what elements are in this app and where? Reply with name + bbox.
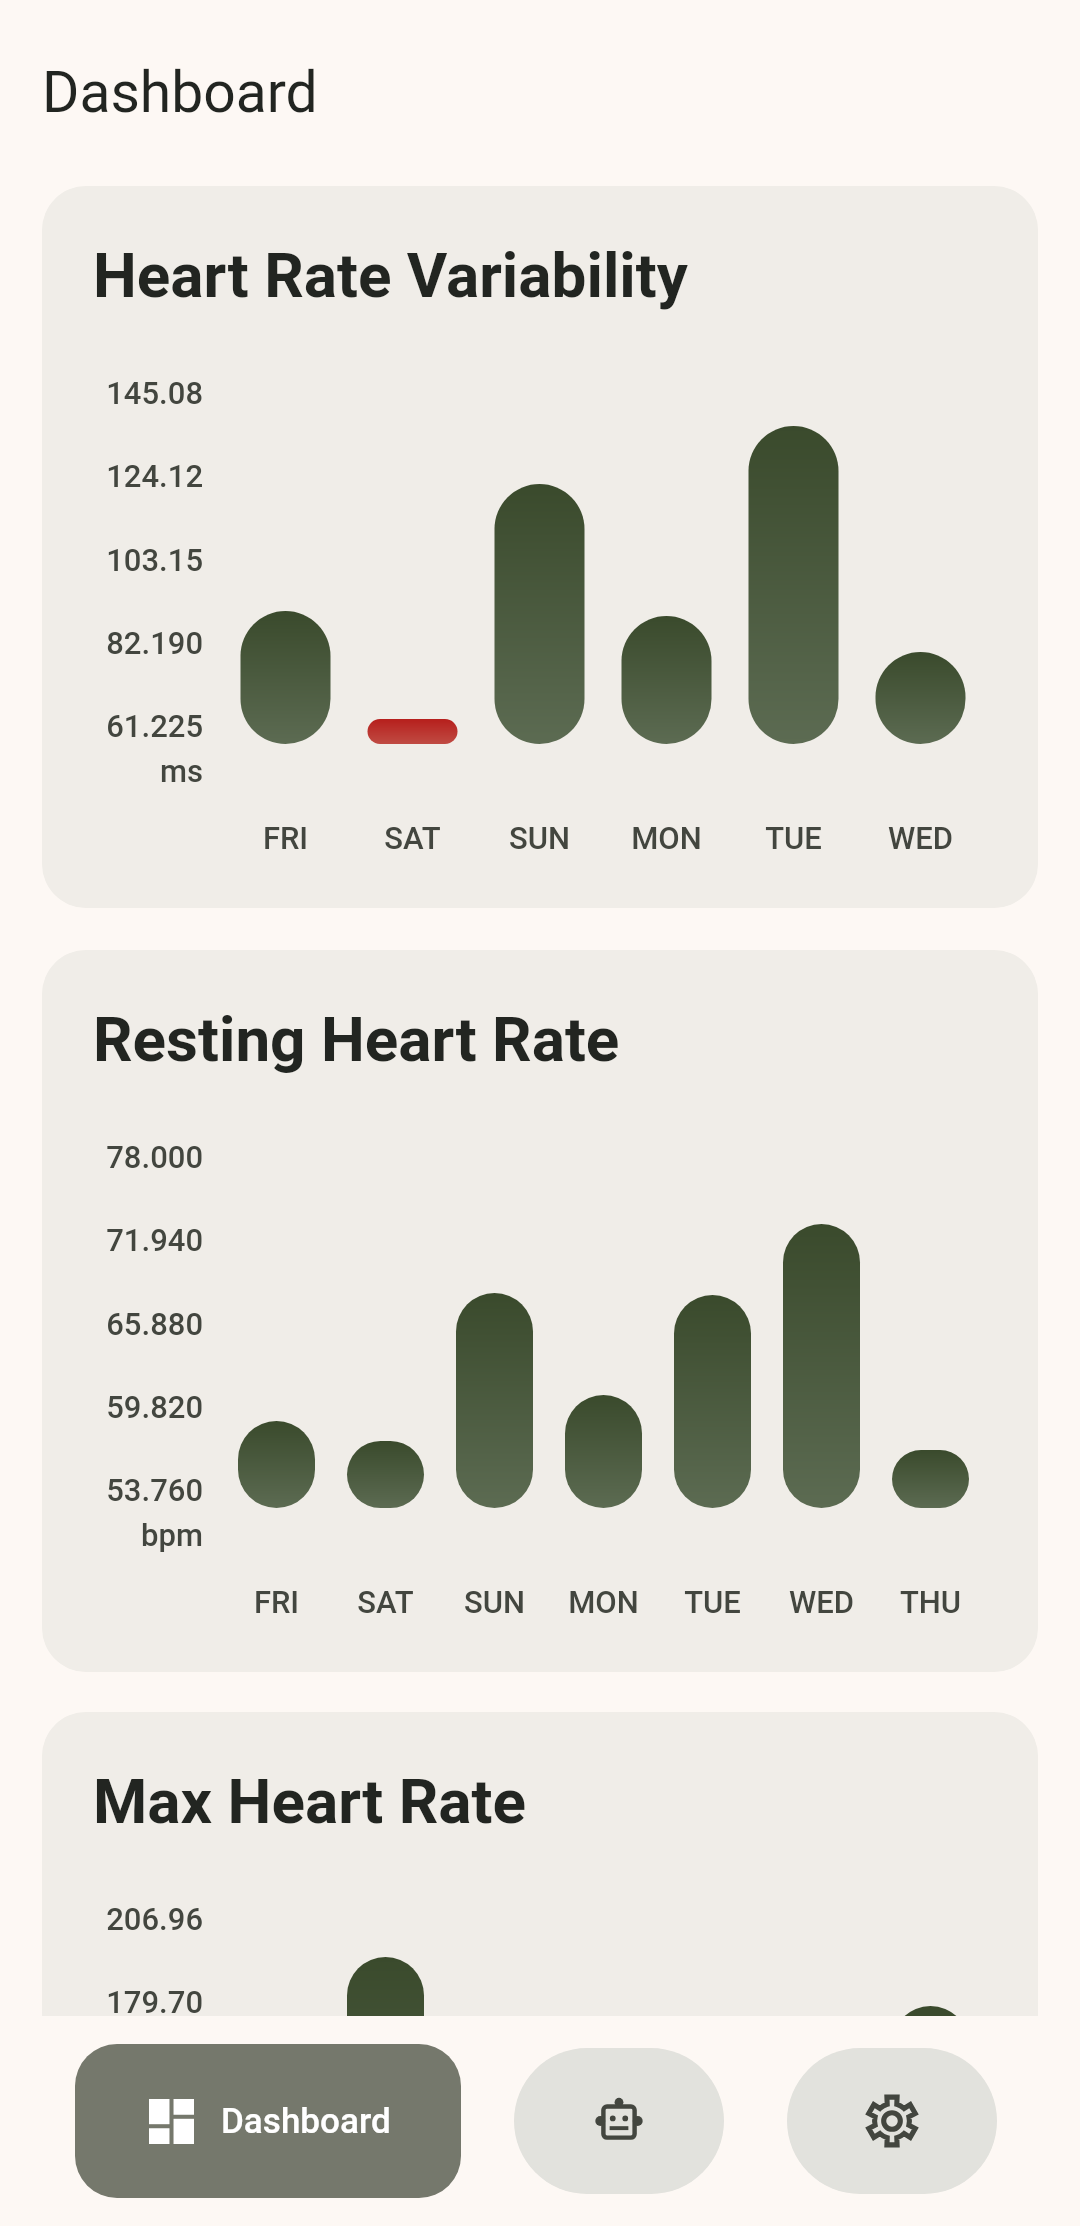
staticText: 78.000 [42,1139,203,1175]
staticText: Dashboard [221,2101,391,2142]
button[interactable]: Max Heart Rate [42,1712,1038,2016]
staticText: Resting Heart Rate [93,1003,620,1076]
staticText: bpm [42,1517,203,1553]
staticText: TUE [658,1584,767,1620]
staticText: 179.70 [42,1984,203,2016]
staticText: 124.12 [42,458,203,494]
staticText: 71.940 [42,1222,203,1258]
staticText: 103.15 [42,542,203,578]
button[interactable]: Heart Rate Variability [42,186,1038,908]
staticText: SUN [476,820,603,856]
staticText: Dashboard [42,59,318,126]
staticText: THU [876,1584,985,1620]
staticText: SAT [331,1584,440,1620]
staticText: MON [549,1584,658,1620]
staticText: ms [42,753,203,789]
staticText: SAT [349,820,476,856]
staticText: 65.880 [42,1306,203,1342]
button[interactable]: Settings [787,2048,997,2194]
staticText: Max Heart Rate [93,1765,526,1838]
staticText: WED [767,1584,876,1620]
staticText: 61.225 [42,708,203,744]
button[interactable]: Assistant [514,2048,724,2194]
staticText: WED [857,820,984,856]
button[interactable]: Dashboard [75,2044,461,2198]
staticText: 59.820 [42,1389,203,1425]
staticText: Heart Rate Variability [93,239,688,312]
staticText: SUN [440,1584,549,1620]
staticText: 82.190 [42,625,203,661]
staticText: FRI [222,1584,331,1620]
button[interactable]: Resting Heart Rate [42,950,1038,1672]
staticText: 206.96 [42,1901,203,1937]
staticText: FRI [222,820,349,856]
staticText: 53.760 [42,1472,203,1508]
staticText: 145.08 [42,375,203,411]
staticText: MON [603,820,730,856]
staticText: TUE [730,820,857,856]
